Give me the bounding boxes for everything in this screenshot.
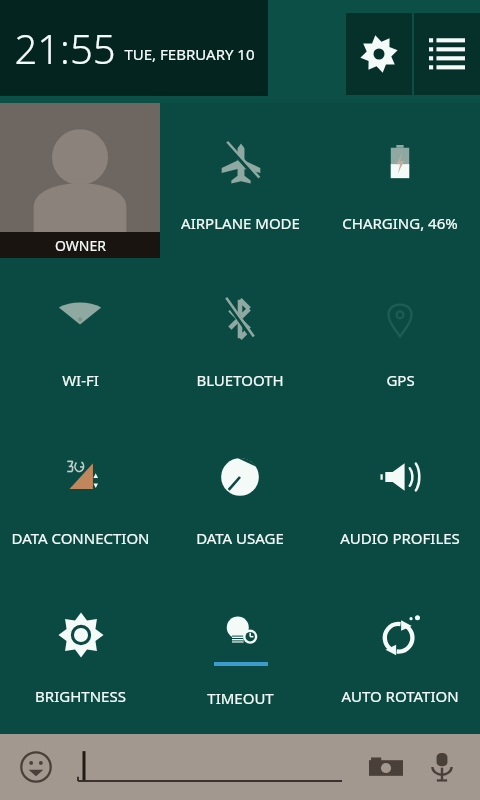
staticText: TIMEOUT [207,688,274,708]
button[interactable]: AUTO ROTATION [320,576,480,734]
button[interactable]: Camera [362,743,410,791]
button[interactable]: Microphone [418,743,466,791]
button[interactable]: DATA USAGE [160,418,320,576]
staticText: DATA CONNECTION [11,528,150,548]
button[interactable]: OWNER [0,103,160,260]
button[interactable]: AUDIO PROFILES [320,418,480,576]
staticText: AIRPLANE MODE [181,213,300,233]
staticText: OWNER [55,236,106,255]
staticText: WI-FI [62,370,99,390]
button[interactable]: Toggle list view [414,13,480,95]
button[interactable]: AIRPLANE MODE [160,103,320,260]
button[interactable]: WI-FI [0,260,160,418]
staticText: 21:55 [14,21,116,75]
button[interactable] [72,745,352,789]
button[interactable]: DATA CONNECTION [0,418,160,576]
staticText: AUDIO PROFILES [340,528,460,548]
button[interactable]: GPS [320,260,480,418]
button[interactable]: BLUETOOTH [160,260,320,418]
button[interactable]: BRIGHTNESS [0,576,160,734]
staticText: TUE, FEBRUARY 10 [124,44,255,64]
staticText: BRIGHTNESS [35,686,126,706]
button[interactable]: TIMEOUT [160,576,320,734]
button[interactable]: CHARGING, 46% [320,103,480,260]
staticText: GPS [386,370,415,390]
staticText: CHARGING, 46% [342,213,458,233]
button[interactable]: Emoji [14,745,58,789]
staticText: BLUETOOTH [196,370,284,390]
button[interactable]: Settings [346,13,412,95]
staticText: AUTO ROTATION [341,686,459,706]
staticText: DATA USAGE [196,528,284,548]
